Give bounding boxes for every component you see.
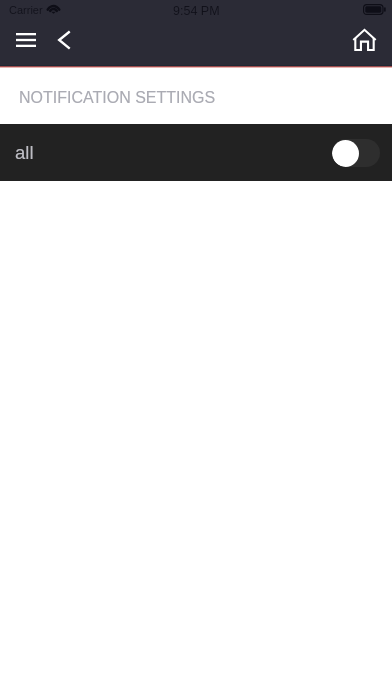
button[interactable]: Home <box>344 20 384 60</box>
button[interactable]: all <box>0 124 392 181</box>
button[interactable]: Menu <box>6 20 46 60</box>
button[interactable]: Toggle all notifications <box>332 139 380 167</box>
staticText: 9:54 PM <box>173 4 220 18</box>
button[interactable]: Back <box>44 20 84 60</box>
staticText: all <box>15 142 34 163</box>
staticText: NOTIFICATION SETTINGS <box>19 89 216 107</box>
staticText: Carrier <box>9 4 43 16</box>
